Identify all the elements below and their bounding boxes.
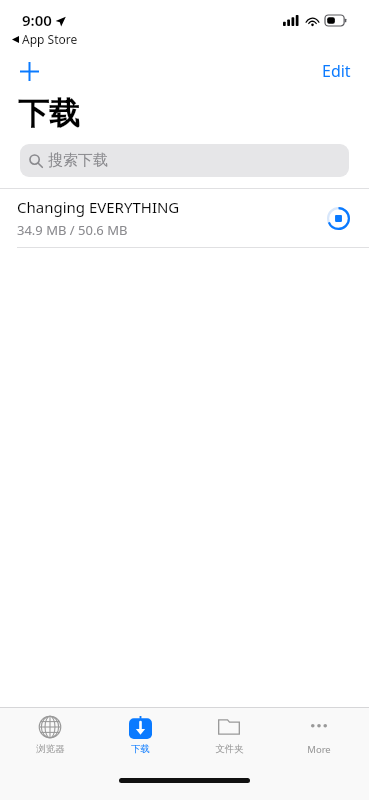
button[interactable]: Changing EVERYTHING xyxy=(0,189,369,247)
button[interactable]: 下载 xyxy=(101,708,179,764)
button[interactable]: 浏览器 xyxy=(11,708,89,764)
staticText: 9:00 xyxy=(22,10,52,30)
button[interactable]: More xyxy=(280,708,358,764)
staticText: 文件夹 xyxy=(215,743,244,755)
staticText: 下载 xyxy=(131,743,150,755)
staticText: Changing EVERYTHING xyxy=(17,197,180,217)
staticText: 搜索下载 xyxy=(48,151,108,170)
staticText: 34.9 MB / 50.6 MB xyxy=(17,221,128,239)
button[interactable]: App Store xyxy=(10,30,80,48)
staticText: App Store xyxy=(22,31,78,47)
button[interactable]: 文件夹 xyxy=(190,708,268,764)
button[interactable]: Pause download xyxy=(323,203,353,233)
staticText: Edit xyxy=(322,60,351,82)
staticText: 浏览器 xyxy=(36,743,65,755)
button[interactable]: 搜索下载 xyxy=(20,144,349,177)
button[interactable]: Edit xyxy=(318,56,355,86)
button[interactable]: Add download xyxy=(12,54,46,88)
staticText: 下载 xyxy=(18,94,80,133)
staticText: More xyxy=(307,743,331,756)
